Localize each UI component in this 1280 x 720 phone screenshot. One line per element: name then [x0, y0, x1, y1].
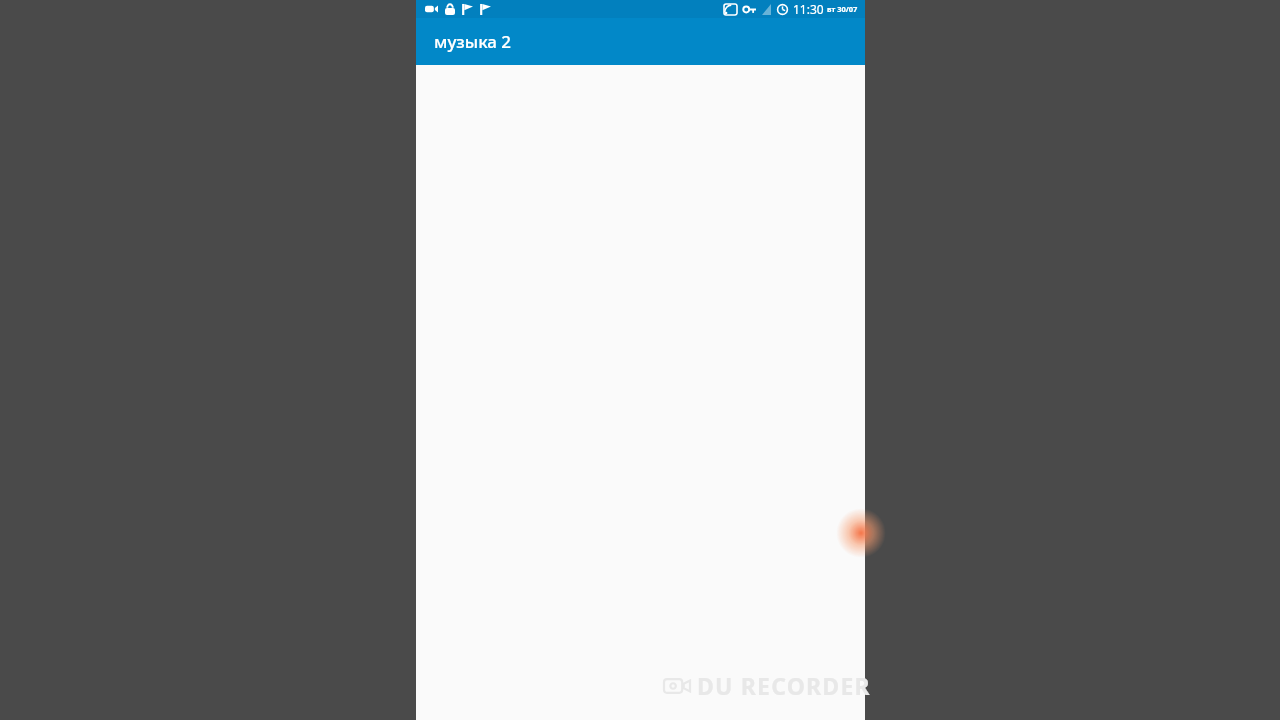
staticText: 11:30 — [793, 1, 824, 17]
button[interactable]: Floating action — [849, 513, 889, 553]
staticText: вт 30/07 — [827, 4, 858, 14]
staticText: музыка 2 — [434, 30, 512, 53]
staticText: DU RECORDER — [697, 670, 871, 701]
